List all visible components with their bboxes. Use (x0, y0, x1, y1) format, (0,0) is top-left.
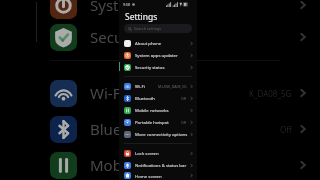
button[interactable]: Notifications & status bar (119, 159, 197, 171)
button[interactable]: Wi-Fi (0, 76, 320, 110)
staticText: Security status (135, 64, 165, 70)
staticText: Bluetooth (135, 95, 155, 101)
staticText: Settings (125, 11, 158, 23)
button[interactable]: Bluetooth (119, 92, 197, 104)
staticText: Off (181, 120, 187, 125)
staticText: M-LINK_DA08_5G (158, 84, 187, 89)
button[interactable]: Search settings (124, 24, 192, 33)
button[interactable]: Blueto (0, 112, 320, 146)
staticText: Wi-Fi (90, 83, 125, 103)
staticText: Wi-Fi (135, 83, 145, 89)
staticText: Search settings (134, 26, 162, 31)
button[interactable]: Security status (119, 61, 197, 73)
staticText: System (90, 0, 141, 15)
staticText: More connectivity options (135, 131, 188, 137)
staticText: Off (280, 124, 292, 135)
staticText: Lock screen (135, 150, 159, 156)
staticText: Mobile (90, 155, 139, 175)
staticText: Off (181, 96, 187, 101)
button[interactable]: Home screen (119, 171, 197, 180)
staticText: Portable hotspot (135, 119, 169, 125)
button[interactable]: Portable hotspot (119, 116, 197, 128)
button[interactable]: Wi-Fi (119, 80, 197, 92)
button[interactable]: Lock screen (119, 147, 197, 159)
button[interactable]: More connectivity options (119, 128, 197, 140)
button[interactable]: Securi (0, 20, 320, 54)
staticText: Notifications & status bar (135, 162, 187, 168)
button[interactable]: Mobile networks (119, 104, 197, 116)
staticText: About phone (135, 40, 162, 46)
button[interactable]: About phone (119, 37, 197, 49)
staticText: System apps updater (135, 52, 178, 58)
button[interactable]: System apps updater (119, 49, 197, 61)
button[interactable]: System (0, 0, 320, 22)
staticText: Mobile networks (135, 107, 169, 113)
staticText: Blueto (90, 119, 136, 139)
staticText: Securi (90, 27, 134, 47)
staticText: 9:58 (123, 2, 131, 7)
staticText: K_DA08_5G (249, 88, 292, 99)
staticText: Home screen (135, 173, 162, 179)
button[interactable]: Mobile (0, 148, 320, 180)
